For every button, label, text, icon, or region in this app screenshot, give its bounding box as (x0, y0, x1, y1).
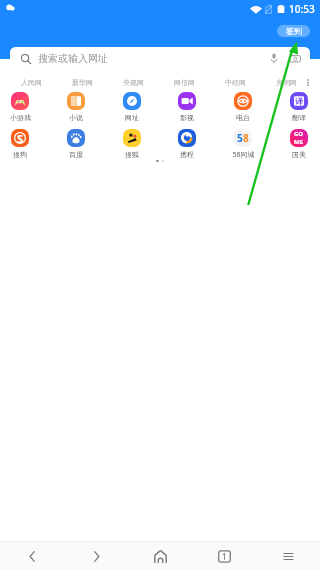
button[interactable]: 央视网 (110, 72, 156, 92)
staticText: S (17, 131, 24, 146)
button[interactable]: Forward (64, 542, 128, 570)
button[interactable]: 影视 (161, 88, 213, 122)
staticText: 百度 (69, 150, 83, 159)
staticText: 光明网 (276, 78, 297, 87)
staticText: 携程 (180, 150, 194, 159)
staticText: 中经网 (225, 78, 246, 87)
staticText: 人民网 (21, 78, 42, 87)
button[interactable]: 网信网 (161, 72, 207, 92)
button[interactable]: 电台 (217, 88, 269, 122)
staticText: 影视 (180, 113, 194, 122)
button[interactable]: 5 (217, 125, 269, 160)
button[interactable]: 签到 (277, 25, 310, 37)
button[interactable]: More sites (300, 72, 315, 92)
button[interactable]: Menu (256, 542, 320, 570)
staticText: 搜狗 (13, 150, 27, 159)
staticText: 网址 (125, 113, 139, 122)
button[interactable]: Back (0, 542, 64, 570)
button[interactable]: Tabs (192, 542, 256, 570)
staticText: 签到 (286, 26, 302, 36)
staticText: 5 (237, 131, 243, 145)
staticText: 小说 (69, 113, 83, 122)
button[interactable]: 人民网 (8, 72, 54, 92)
button[interactable]: 百度 (50, 125, 102, 159)
staticText: 翻译 (292, 113, 306, 122)
staticText: 新华网 (72, 78, 93, 87)
staticText: 网信网 (174, 78, 195, 87)
button[interactable]: 光明网 (263, 72, 309, 92)
staticText: 小游戏 (10, 113, 31, 122)
button[interactable]: 搜狐 (106, 125, 158, 159)
staticText: GO (294, 130, 304, 138)
button[interactable]: Home (128, 542, 192, 570)
button[interactable]: 中经网 (212, 72, 258, 92)
button[interactable]: 新华网 (59, 72, 105, 92)
button[interactable]: 网址 (106, 88, 158, 122)
button[interactable]: 译 (273, 88, 320, 122)
button[interactable]: GO (273, 125, 320, 159)
staticText: 8 (243, 131, 249, 145)
button[interactable]: S (0, 125, 46, 159)
staticText: 央视网 (123, 78, 144, 87)
button[interactable]: 搜索或输入网址 (10, 47, 310, 70)
staticText: 搜狐 (125, 150, 139, 159)
staticText: 国美 (292, 150, 306, 159)
staticText: 10:53 (289, 2, 315, 16)
button[interactable]: 小说 (50, 88, 102, 122)
staticText: 1 (222, 551, 227, 562)
button[interactable]: 小游戏 (0, 88, 46, 122)
staticText: 搜索或输入网址 (38, 52, 108, 65)
button[interactable]: 携程 (161, 125, 213, 159)
staticText: 58同城 (232, 150, 255, 160)
staticText: 译 (295, 96, 303, 106)
staticText: ME (294, 138, 304, 146)
staticText: 电台 (236, 113, 250, 122)
